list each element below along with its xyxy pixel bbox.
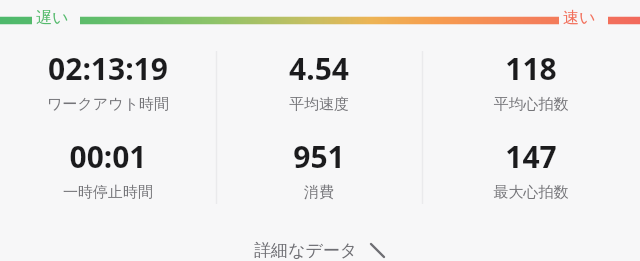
button[interactable]: 4.54 <box>216 48 422 114</box>
button[interactable]: 147 <box>422 136 640 202</box>
staticText: 4.54 <box>216 48 422 89</box>
staticText: 一時停止時間 <box>0 183 216 202</box>
staticText: 951 <box>216 136 422 177</box>
staticText: 遅い <box>36 8 69 28</box>
other: 詳細なデータを表示 <box>369 242 387 260</box>
staticText: 詳細なデータ <box>254 240 358 261</box>
staticText: 00:01 <box>0 136 216 177</box>
button[interactable]: 詳細なデータ <box>0 225 640 261</box>
button[interactable]: 02:13:19 <box>0 48 216 114</box>
staticText: 最大心拍数 <box>422 183 640 202</box>
staticText: 02:13:19 <box>0 48 216 89</box>
staticText: ワークアウト時間 <box>0 95 216 114</box>
button[interactable]: 118 <box>422 48 640 114</box>
staticText: 118 <box>422 48 640 89</box>
staticText: 平均速度 <box>216 95 422 114</box>
staticText: 平均心拍数 <box>422 95 640 114</box>
button[interactable]: 951 <box>216 136 422 202</box>
button[interactable]: 00:01 <box>0 136 216 202</box>
staticText: 速い <box>563 8 596 28</box>
staticText: 147 <box>422 136 640 177</box>
staticText: 消費 <box>216 183 422 202</box>
